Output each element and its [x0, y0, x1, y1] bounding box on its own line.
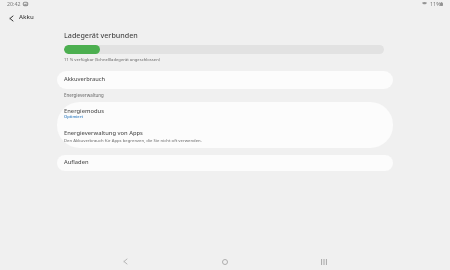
button[interactable]	[57, 102, 393, 124]
staticText: Ladegerät verbunden	[64, 30, 138, 40]
staticText: Energieverwaltung von Apps	[64, 129, 143, 137]
staticText: Energiemodus	[64, 107, 104, 115]
button[interactable]	[57, 124, 393, 148]
staticText: Aufladen	[64, 158, 89, 166]
staticText: Energieverwaltung	[64, 92, 104, 98]
staticText: 11%	[430, 0, 441, 7]
button[interactable]: Letzte Apps	[316, 254, 331, 269]
button[interactable]: Zurück	[4, 11, 18, 25]
staticText: Akku	[19, 13, 34, 21]
staticText: 11 % verfügbar (Schnellladegerät angesch…	[64, 57, 160, 63]
staticText: Akkuverbrauch	[64, 75, 105, 83]
staticText: 20:42	[7, 0, 21, 7]
staticText: Den Akkuverbrauch für Apps begrenzen, di…	[64, 138, 202, 144]
staticText: Optimiert	[64, 114, 83, 120]
button[interactable]: Startbildschirm	[217, 254, 232, 269]
button[interactable]: Zurück	[118, 254, 133, 269]
